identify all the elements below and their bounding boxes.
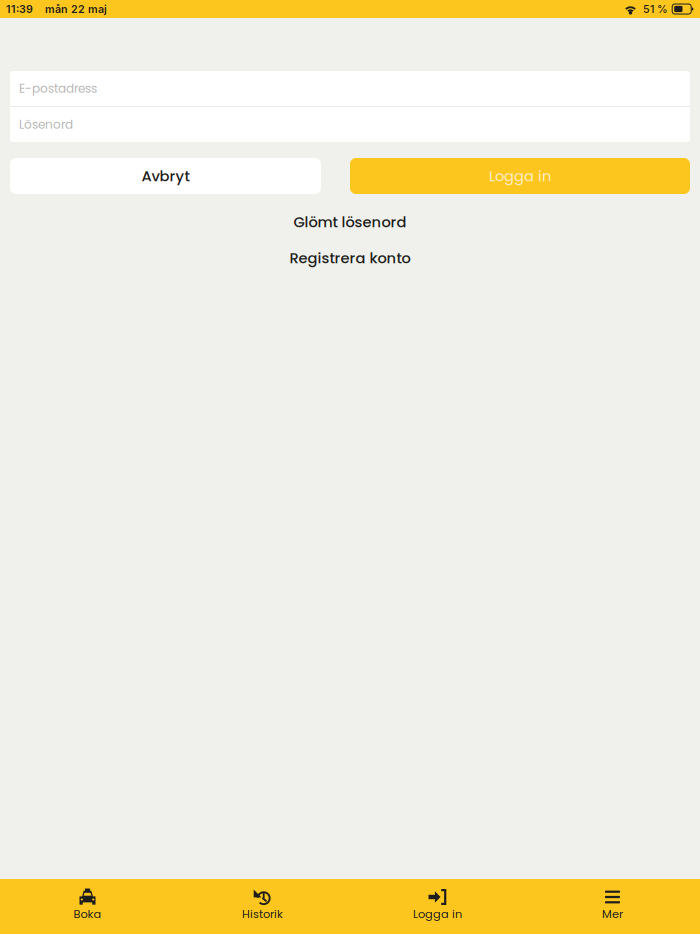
staticText: Mer — [602, 906, 623, 922]
staticText: Logga in — [489, 166, 551, 186]
staticText: Avbryt — [141, 166, 189, 186]
staticText: Boka — [73, 906, 101, 922]
staticText: Lösenord — [19, 116, 73, 133]
button[interactable]: Boka — [0, 879, 175, 934]
staticText: 51 % — [643, 2, 668, 15]
staticText: Historik — [242, 906, 283, 922]
staticText: Logga in — [413, 906, 462, 922]
button[interactable]: Glömt lösenord — [0, 211, 700, 233]
button[interactable]: Registrera konto — [0, 247, 700, 269]
button[interactable]: Mer — [525, 879, 700, 934]
staticText: E-postadress — [19, 80, 97, 97]
button[interactable]: Avbryt — [10, 158, 321, 194]
staticText: Glömt lösenord — [293, 212, 406, 232]
staticText: Registrera konto — [289, 248, 410, 268]
button[interactable]: Logga in — [350, 879, 525, 934]
staticText: 11:39 — [6, 2, 33, 15]
staticText: mån 22 maj — [45, 2, 107, 15]
button[interactable]: Historik — [175, 879, 350, 934]
button[interactable]: Logga in — [350, 158, 690, 194]
